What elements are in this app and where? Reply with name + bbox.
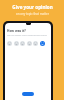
staticText: on any topic that matter — [16, 12, 49, 16]
staticText: Tell us about your experience today — [7, 33, 47, 36]
button[interactable]: Rating — [33, 41, 38, 46]
button[interactable]: Rating — [7, 41, 12, 46]
staticText: How was it? — [7, 29, 26, 33]
button[interactable]: Rating — [40, 41, 45, 46]
button[interactable]: Rating — [14, 41, 19, 46]
button[interactable]: Rating — [27, 41, 32, 46]
button[interactable]: Submit — [22, 92, 34, 96]
button[interactable]: Rating — [20, 41, 25, 46]
staticText: Give your opinion — [12, 4, 53, 10]
